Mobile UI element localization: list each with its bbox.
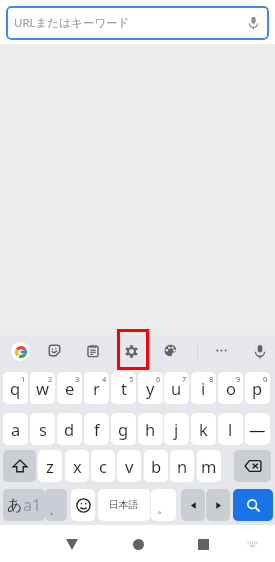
button[interactable]: Search xyxy=(233,489,273,521)
staticText: g xyxy=(118,418,129,440)
staticText: y xyxy=(146,377,155,399)
button[interactable]: o xyxy=(218,372,243,404)
button[interactable]: c xyxy=(91,450,115,482)
staticText: p xyxy=(252,377,263,399)
staticText: l xyxy=(228,418,233,440)
staticText: k xyxy=(199,418,208,440)
staticText: 1 xyxy=(21,374,26,384)
button[interactable]: Home xyxy=(125,531,151,557)
button[interactable]: x xyxy=(65,450,89,482)
staticText: — xyxy=(249,418,266,440)
button[interactable]: m xyxy=(197,450,221,482)
button[interactable]: p xyxy=(245,372,270,404)
staticText: 日本語 xyxy=(109,499,139,511)
button[interactable]: k xyxy=(191,413,216,445)
button[interactable]: y xyxy=(138,372,163,404)
staticText: URLまたはキーワード xyxy=(14,15,130,31)
button[interactable]: e xyxy=(57,372,82,404)
staticText: n xyxy=(177,455,188,477)
button[interactable]: Emoji xyxy=(71,489,95,521)
staticText: m xyxy=(201,455,217,477)
button[interactable]: i xyxy=(191,372,216,404)
button[interactable]: — xyxy=(245,413,270,445)
staticText: 2 xyxy=(48,374,53,384)
staticText: 0 xyxy=(263,374,268,384)
staticText: f xyxy=(94,418,100,440)
staticText: o xyxy=(226,377,236,399)
button[interactable]: Backspace xyxy=(234,450,271,482)
staticText: t xyxy=(121,377,127,399)
button[interactable]: u xyxy=(164,372,189,404)
staticText: x xyxy=(73,455,82,477)
staticText: b xyxy=(151,455,162,477)
staticText: i xyxy=(201,377,206,399)
staticText: 7 xyxy=(182,374,187,384)
staticText: q xyxy=(10,377,21,399)
button[interactable]: q xyxy=(3,372,28,404)
button[interactable]: w xyxy=(30,372,55,404)
staticText: 。 xyxy=(157,501,169,516)
staticText: v xyxy=(125,455,134,477)
button[interactable]: a xyxy=(3,413,28,445)
button[interactable]: b xyxy=(144,450,168,482)
staticText: あ xyxy=(7,496,23,515)
button[interactable]: Back xyxy=(59,531,85,557)
button[interactable]: s xyxy=(30,413,55,445)
staticText: z xyxy=(46,455,54,477)
staticText: j xyxy=(174,418,179,440)
button[interactable]: Keyboard settings xyxy=(125,345,138,358)
button[interactable]: v xyxy=(117,450,141,482)
staticText: h xyxy=(145,418,156,440)
button[interactable]: More options xyxy=(216,345,227,356)
button[interactable]: Move cursor right xyxy=(206,489,230,521)
button[interactable]: Switch keyboard xyxy=(239,531,265,557)
button[interactable]: URLまたはキーワード xyxy=(6,6,269,40)
staticText: 、 xyxy=(49,501,61,516)
button[interactable]: h xyxy=(138,413,163,445)
button[interactable]: j xyxy=(164,413,189,445)
other: Voice search xyxy=(249,16,258,30)
button[interactable]: Recent apps xyxy=(190,531,216,557)
button[interactable]: 。 xyxy=(151,489,176,521)
staticText: d xyxy=(64,418,75,440)
staticText: a1 xyxy=(23,494,42,516)
staticText: e xyxy=(65,377,75,399)
staticText: 6 xyxy=(156,374,161,384)
button[interactable]: l xyxy=(218,413,243,445)
button[interactable]: 日本語 xyxy=(98,489,150,521)
staticText: 9 xyxy=(236,374,241,384)
button[interactable]: n xyxy=(170,450,194,482)
button[interactable]: Voice input xyxy=(255,344,265,359)
button[interactable]: f xyxy=(84,413,109,445)
staticText: 5 xyxy=(129,374,134,384)
staticText: s xyxy=(39,418,47,440)
staticText: a xyxy=(11,418,21,440)
button[interactable]: d xyxy=(57,413,82,445)
staticText: u xyxy=(171,377,182,399)
staticText: 3 xyxy=(75,374,80,384)
button[interactable]: r xyxy=(84,372,109,404)
staticText: 8 xyxy=(209,374,214,384)
button[interactable]: Clipboard xyxy=(86,344,100,358)
staticText: r xyxy=(93,377,100,399)
button[interactable]: Google xyxy=(11,342,30,361)
staticText: c xyxy=(99,455,107,477)
button[interactable]: Switch input mode xyxy=(3,489,45,521)
button[interactable]: t xyxy=(111,372,136,404)
button[interactable]: Shift xyxy=(3,450,36,482)
button[interactable]: Move cursor left xyxy=(181,489,205,521)
staticText: w xyxy=(36,377,49,399)
button[interactable]: Themes xyxy=(164,344,177,357)
button[interactable]: Stickers xyxy=(48,344,61,357)
button[interactable]: 、 xyxy=(45,489,67,521)
button[interactable]: g xyxy=(111,413,136,445)
button[interactable]: z xyxy=(38,450,62,482)
staticText: 4 xyxy=(102,374,107,384)
